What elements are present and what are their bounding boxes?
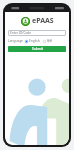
- button[interactable]: English: [25, 39, 40, 43]
- button[interactable]: ePAAS logo: [8, 16, 66, 26]
- staticText: ePAAS: [32, 16, 54, 26]
- staticText: English: [29, 39, 40, 43]
- button[interactable]: Enter ID/Code: [8, 30, 66, 36]
- staticText: हिंदी: [47, 39, 53, 43]
- staticText: Language: [8, 39, 23, 43]
- button[interactable]: हिंदी: [43, 39, 53, 43]
- staticText: Submit: [32, 47, 43, 51]
- button[interactable]: Submit: [8, 46, 66, 52]
- staticText: Enter ID/Code: [10, 31, 32, 35]
- other: ePAAS logo: [21, 17, 30, 26]
